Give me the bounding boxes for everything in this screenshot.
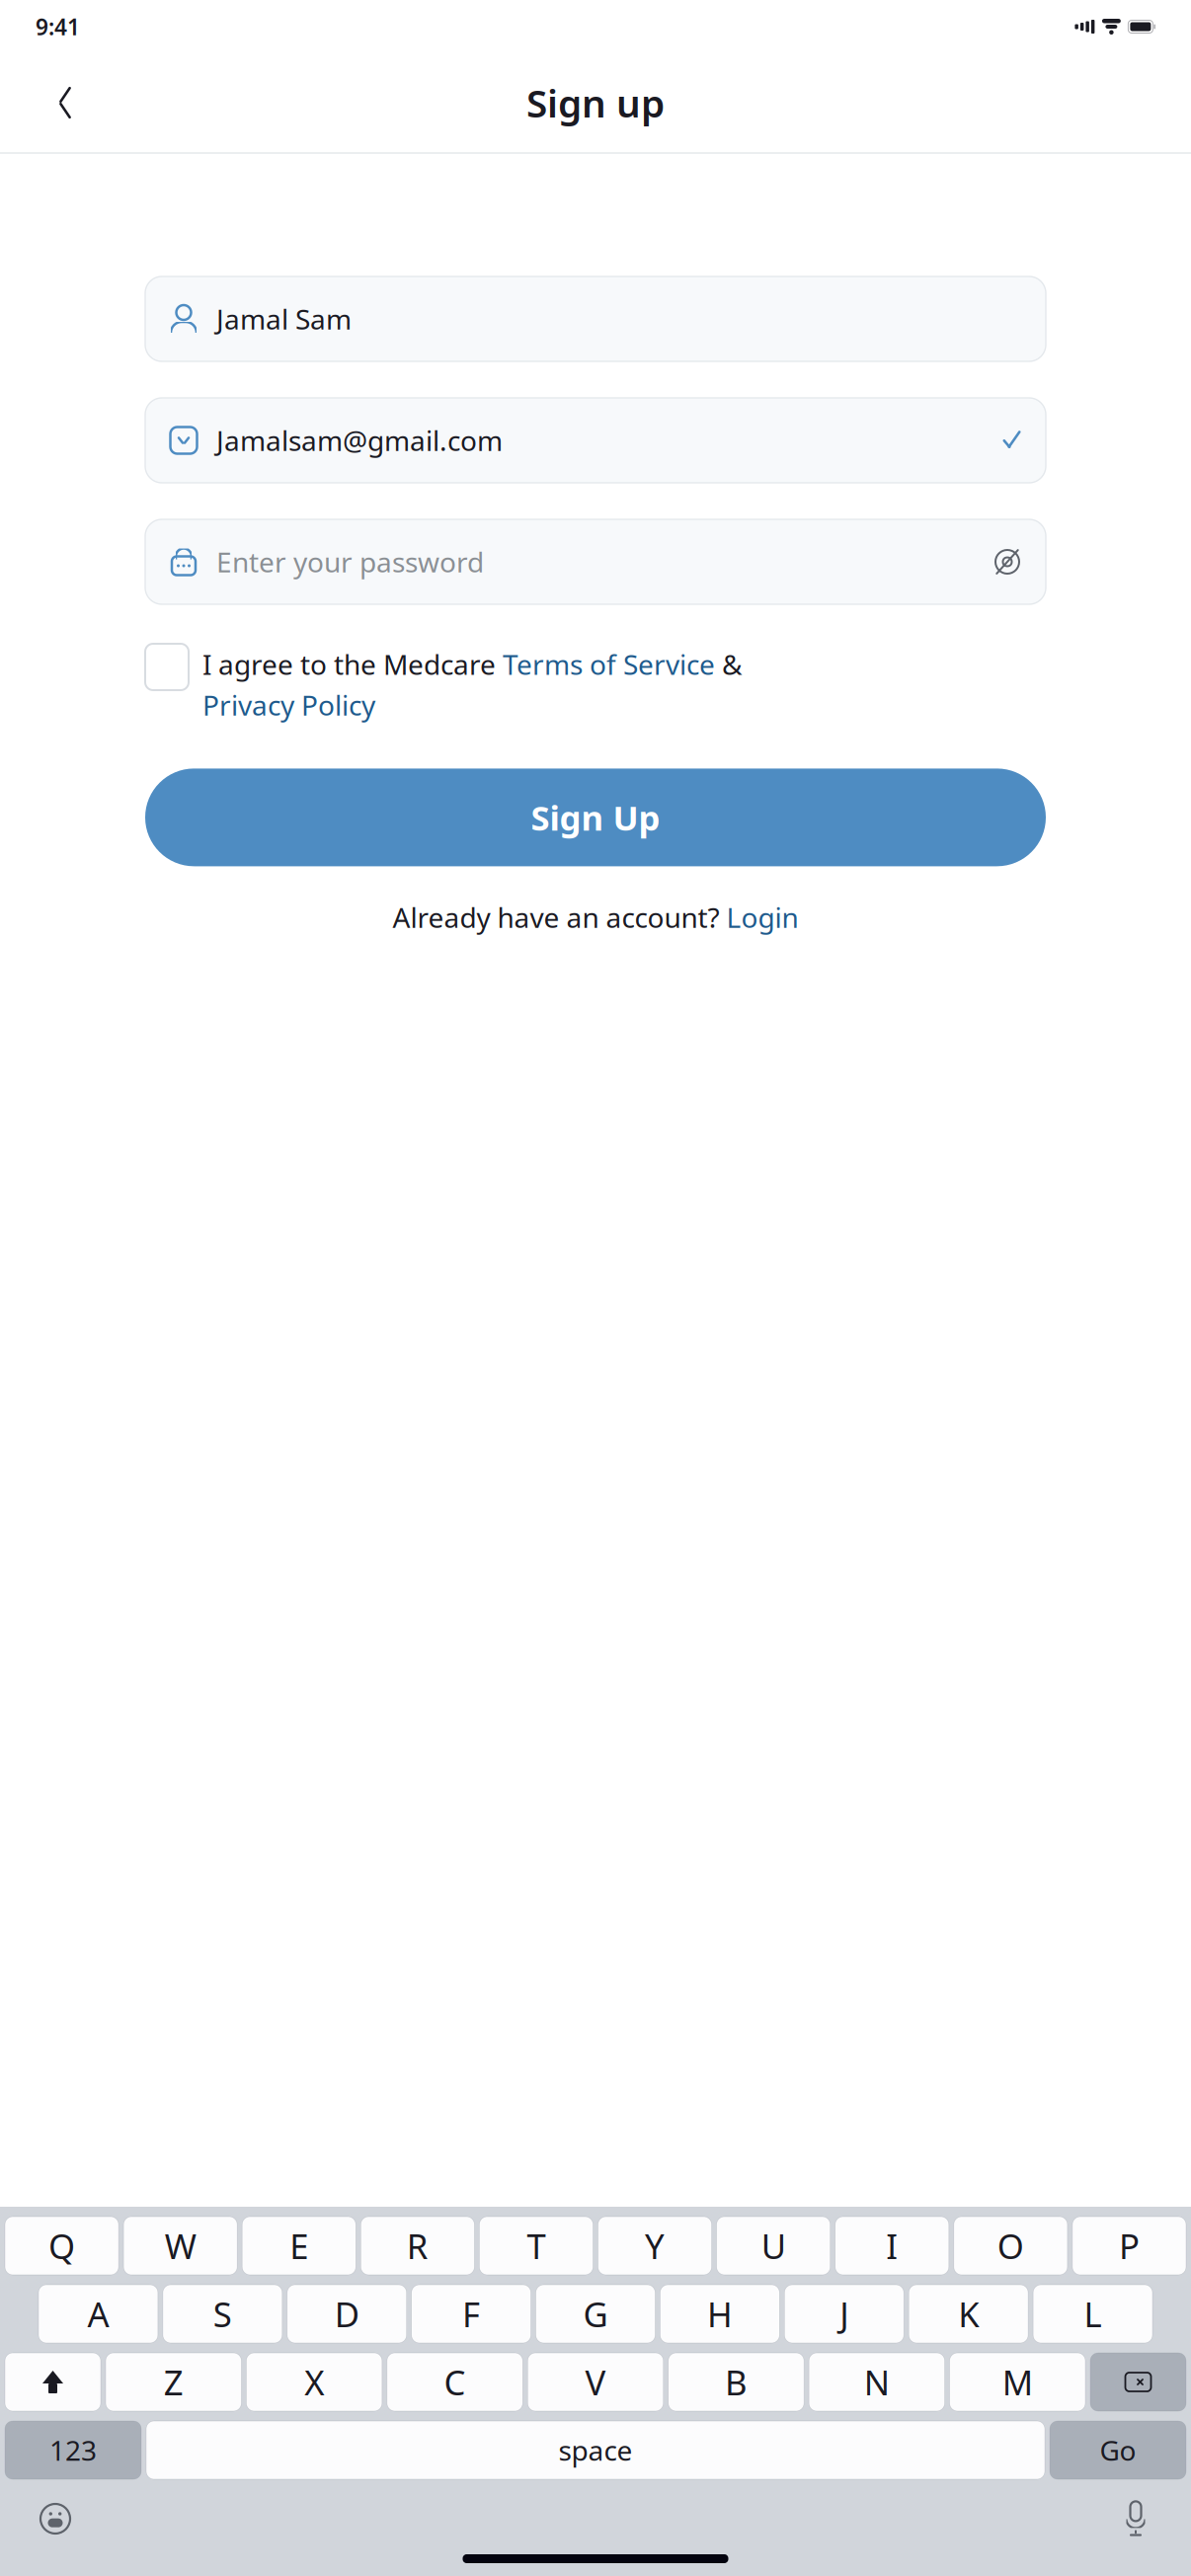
staticText: Y — [645, 2223, 665, 2268]
staticText: L — [1084, 2291, 1102, 2337]
button[interactable]: C — [387, 2353, 523, 2411]
button[interactable]: P — [1072, 2217, 1186, 2275]
staticText: 9:41 — [36, 12, 80, 41]
staticText: Jamalsam@gmail.com — [216, 422, 503, 459]
button[interactable]: I — [835, 2217, 949, 2275]
button[interactable]: Agree to terms — [145, 644, 189, 690]
staticText: M — [1002, 2359, 1033, 2405]
staticText: Z — [164, 2359, 183, 2405]
button[interactable]: B — [668, 2353, 804, 2411]
staticText: Jamal Sam — [216, 301, 352, 337]
button[interactable]: A — [39, 2285, 158, 2343]
staticText: Sign up — [526, 77, 665, 128]
button[interactable]: F — [412, 2285, 531, 2343]
staticText: G — [583, 2291, 608, 2337]
staticText: N — [864, 2359, 890, 2405]
button[interactable]: Y — [598, 2217, 712, 2275]
button[interactable]: D — [287, 2285, 407, 2343]
button[interactable]: E — [242, 2217, 356, 2275]
button[interactable]: Privacy Policy — [202, 686, 375, 723]
button[interactable]: Sign Up — [145, 769, 1046, 866]
button[interactable]: Enter your password — [145, 519, 1046, 604]
staticText: space — [558, 2432, 633, 2468]
staticText: O — [997, 2223, 1024, 2268]
button[interactable]: Shift — [5, 2353, 101, 2411]
button[interactable]: X — [246, 2353, 382, 2411]
button[interactable]: Q — [5, 2217, 119, 2275]
button[interactable]: V — [528, 2353, 663, 2411]
button[interactable]: Delete — [1090, 2353, 1186, 2411]
button[interactable]: Back — [36, 73, 95, 132]
staticText: P — [1119, 2223, 1140, 2268]
button[interactable]: H — [660, 2285, 779, 2343]
staticText: E — [290, 2223, 308, 2268]
button[interactable]: U — [717, 2217, 830, 2275]
button[interactable]: Go — [1050, 2421, 1186, 2479]
staticText: Q — [48, 2223, 75, 2268]
staticText: J — [840, 2291, 849, 2337]
staticText: C — [444, 2359, 466, 2405]
button[interactable]: Jamal Sam — [145, 276, 1046, 361]
button[interactable]: N — [809, 2353, 945, 2411]
button[interactable]: Jamalsam@gmail.com — [145, 398, 1046, 483]
staticText: Already have an account? — [393, 899, 726, 936]
staticText: K — [958, 2291, 979, 2337]
staticText: S — [213, 2291, 232, 2337]
staticText: D — [334, 2291, 359, 2337]
button[interactable]: S — [163, 2285, 282, 2343]
staticText: I — [886, 2223, 898, 2268]
staticText: & — [715, 646, 742, 682]
staticText: V — [585, 2359, 606, 2405]
staticText: W — [165, 2223, 196, 2268]
staticText: Privacy Policy — [202, 686, 375, 723]
staticText: Enter your password — [216, 543, 484, 580]
staticText: U — [761, 2223, 786, 2268]
button[interactable]: Z — [106, 2353, 241, 2411]
button[interactable]: M — [950, 2353, 1085, 2411]
button[interactable]: Dictation — [1108, 2491, 1163, 2546]
staticText: Sign Up — [531, 795, 660, 840]
button[interactable]: W — [124, 2217, 237, 2275]
button[interactable]: K — [909, 2285, 1028, 2343]
button[interactable]: R — [361, 2217, 474, 2275]
button[interactable]: space — [146, 2421, 1045, 2479]
staticText: Go — [1100, 2432, 1136, 2468]
button[interactable]: O — [954, 2217, 1067, 2275]
staticText: T — [527, 2223, 546, 2268]
staticText: Terms of Service — [503, 646, 715, 682]
button[interactable]: 123 — [5, 2421, 141, 2479]
button[interactable]: G — [536, 2285, 655, 2343]
button[interactable]: J — [784, 2285, 904, 2343]
staticText: I agree to the Medcare — [202, 646, 503, 682]
staticText: H — [707, 2291, 733, 2337]
button[interactable]: L — [1033, 2285, 1152, 2343]
button[interactable]: Login — [726, 899, 798, 936]
staticText: A — [87, 2291, 109, 2337]
staticText: X — [304, 2359, 324, 2405]
staticText: 123 — [49, 2432, 97, 2468]
button[interactable]: Emoji — [28, 2491, 83, 2546]
staticText: F — [462, 2291, 480, 2337]
staticText: R — [407, 2223, 429, 2268]
staticText: B — [725, 2359, 747, 2405]
button[interactable]: Terms of Service — [503, 646, 715, 682]
button[interactable]: T — [479, 2217, 593, 2275]
staticText: Login — [726, 899, 798, 936]
